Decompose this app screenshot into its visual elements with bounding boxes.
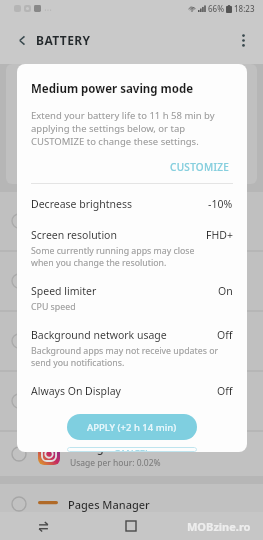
button[interactable]: APPLY (+2 h 14 min) — [67, 414, 197, 440]
button[interactable]: More options — [229, 26, 257, 54]
button[interactable] — [0, 252, 263, 310]
button[interactable]: Recents — [0, 512, 87, 540]
staticText: Pages Manager — [68, 497, 150, 512]
button[interactable]: Speed limiter — [31, 284, 233, 313]
staticText: CPU speed — [31, 301, 76, 313]
staticText: Off — [217, 328, 233, 342]
staticText: On — [218, 284, 233, 298]
staticText: CUSTOMIZE — [170, 160, 230, 174]
staticText: BATTERY — [36, 32, 91, 48]
staticText: Medium power saving mode — [31, 81, 194, 97]
button[interactable]: Instagram — [0, 432, 263, 476]
staticText: FHD+ — [206, 228, 233, 242]
staticText: Speed limiter — [31, 284, 97, 298]
button[interactable]: Back — [175, 512, 263, 540]
staticText: Background apps may not receive updates … — [31, 345, 219, 369]
staticText: Background network usage — [31, 328, 167, 342]
staticText: Decrease brightness — [31, 197, 132, 211]
staticText: 66% — [208, 3, 224, 14]
button[interactable]: Pages Manager — [0, 484, 263, 524]
button[interactable]: Decrease brightness — [31, 197, 233, 211]
button[interactable]: Background network usage — [31, 328, 233, 369]
staticText: CANCEL — [114, 447, 151, 452]
staticText: 18:23 — [234, 3, 255, 14]
staticText: Screen resolution — [31, 228, 117, 242]
button[interactable]: Screen resolution — [31, 228, 233, 269]
button[interactable] — [0, 312, 263, 370]
staticText: Extend your battery life to 11 h 58 min … — [31, 109, 233, 148]
staticText: -10% — [208, 197, 233, 211]
button[interactable]: Back — [8, 26, 36, 54]
button[interactable]: Always On Display — [31, 384, 233, 398]
staticText: Always On Display — [31, 384, 121, 398]
button[interactable]: Home — [87, 512, 175, 540]
button[interactable]: CUSTOMIZE — [167, 158, 233, 176]
staticText: MOBzine.ro — [187, 519, 251, 534]
staticText: Off — [217, 384, 233, 398]
staticText: Some currently running apps may close wh… — [31, 245, 219, 269]
button[interactable]: CANCEL — [67, 447, 197, 452]
staticText: Instagram — [70, 440, 125, 455]
staticText: APPLY (+2 h 14 min) — [87, 421, 177, 434]
button[interactable] — [0, 372, 263, 430]
staticText: Usage per hour: 0.02% — [70, 457, 161, 469]
button[interactable] — [0, 192, 263, 250]
